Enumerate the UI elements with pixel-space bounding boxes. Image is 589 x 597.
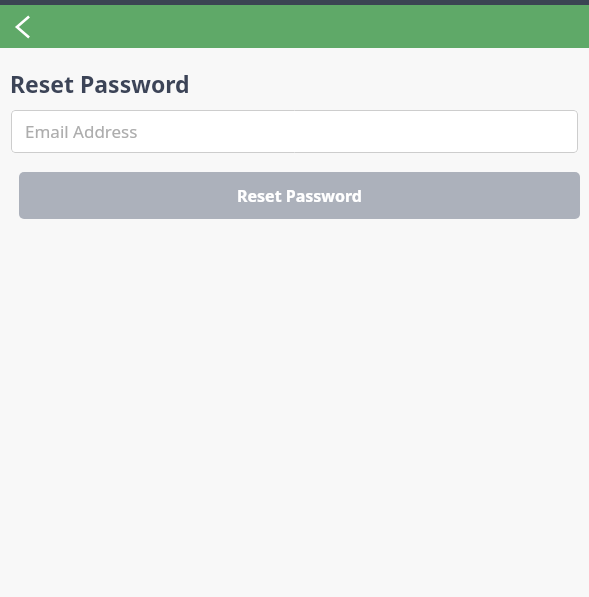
button[interactable]: Back — [2, 5, 44, 48]
staticText: Email Address — [25, 120, 138, 143]
button[interactable]: Email Address — [11, 110, 578, 153]
staticText: Reset Password — [10, 68, 190, 99]
button[interactable]: Reset Password — [19, 172, 580, 219]
staticText: Reset Password — [237, 185, 362, 207]
